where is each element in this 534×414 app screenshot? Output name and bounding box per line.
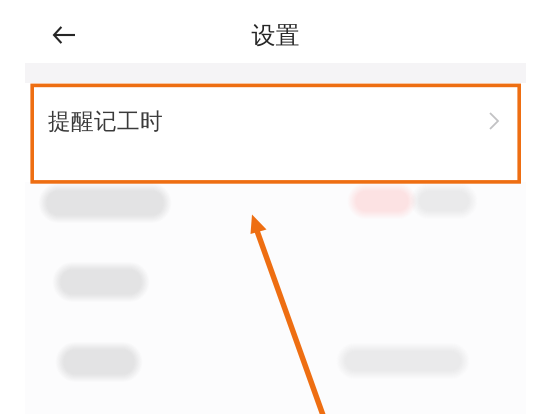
button[interactable]: 提醒记工时 <box>25 83 526 182</box>
staticText: 设置 <box>251 21 299 50</box>
staticText: 提醒记工时 <box>48 107 163 135</box>
button[interactable]: Back <box>42 13 86 57</box>
